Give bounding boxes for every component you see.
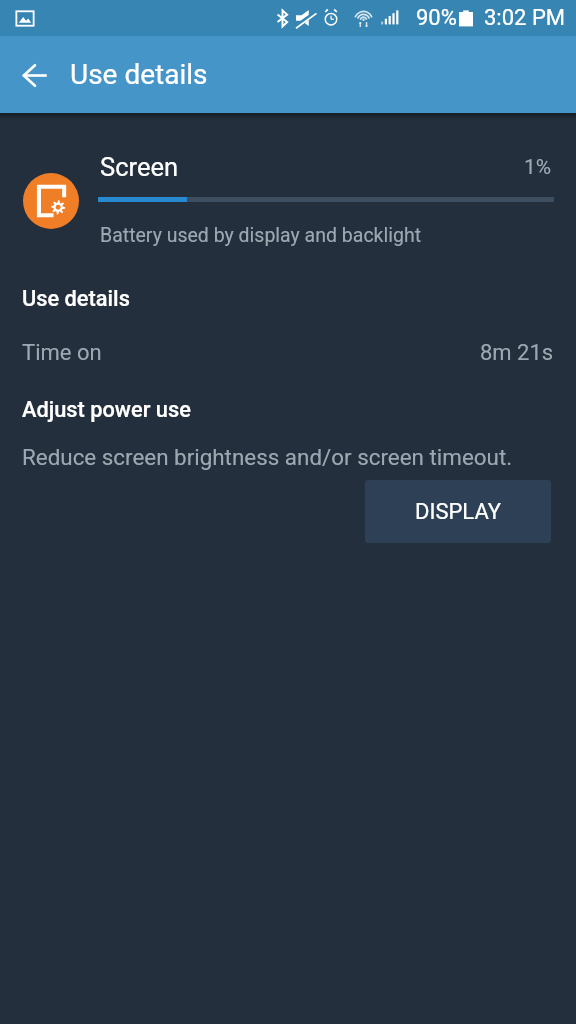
button[interactable]: Back — [10, 51, 58, 99]
staticText: Reduce screen brightness and/or screen t… — [22, 444, 513, 470]
staticText: 3:02 PM — [484, 5, 565, 31]
staticText: Use details — [70, 58, 208, 91]
staticText: 8m 21s — [480, 340, 554, 366]
button[interactable]: DISPLAY — [365, 480, 551, 543]
button[interactable]: Screen battery usage — [23, 173, 79, 229]
staticText: Time on — [22, 340, 102, 366]
staticText: Screen — [100, 152, 179, 182]
staticText: Adjust power use — [22, 397, 191, 423]
staticText: Battery used by display and backlight — [100, 224, 422, 247]
staticText: Use details — [22, 286, 130, 312]
staticText: 1% — [524, 155, 552, 180]
staticText: DISPLAY — [415, 499, 501, 525]
staticText: 90% — [416, 5, 457, 31]
